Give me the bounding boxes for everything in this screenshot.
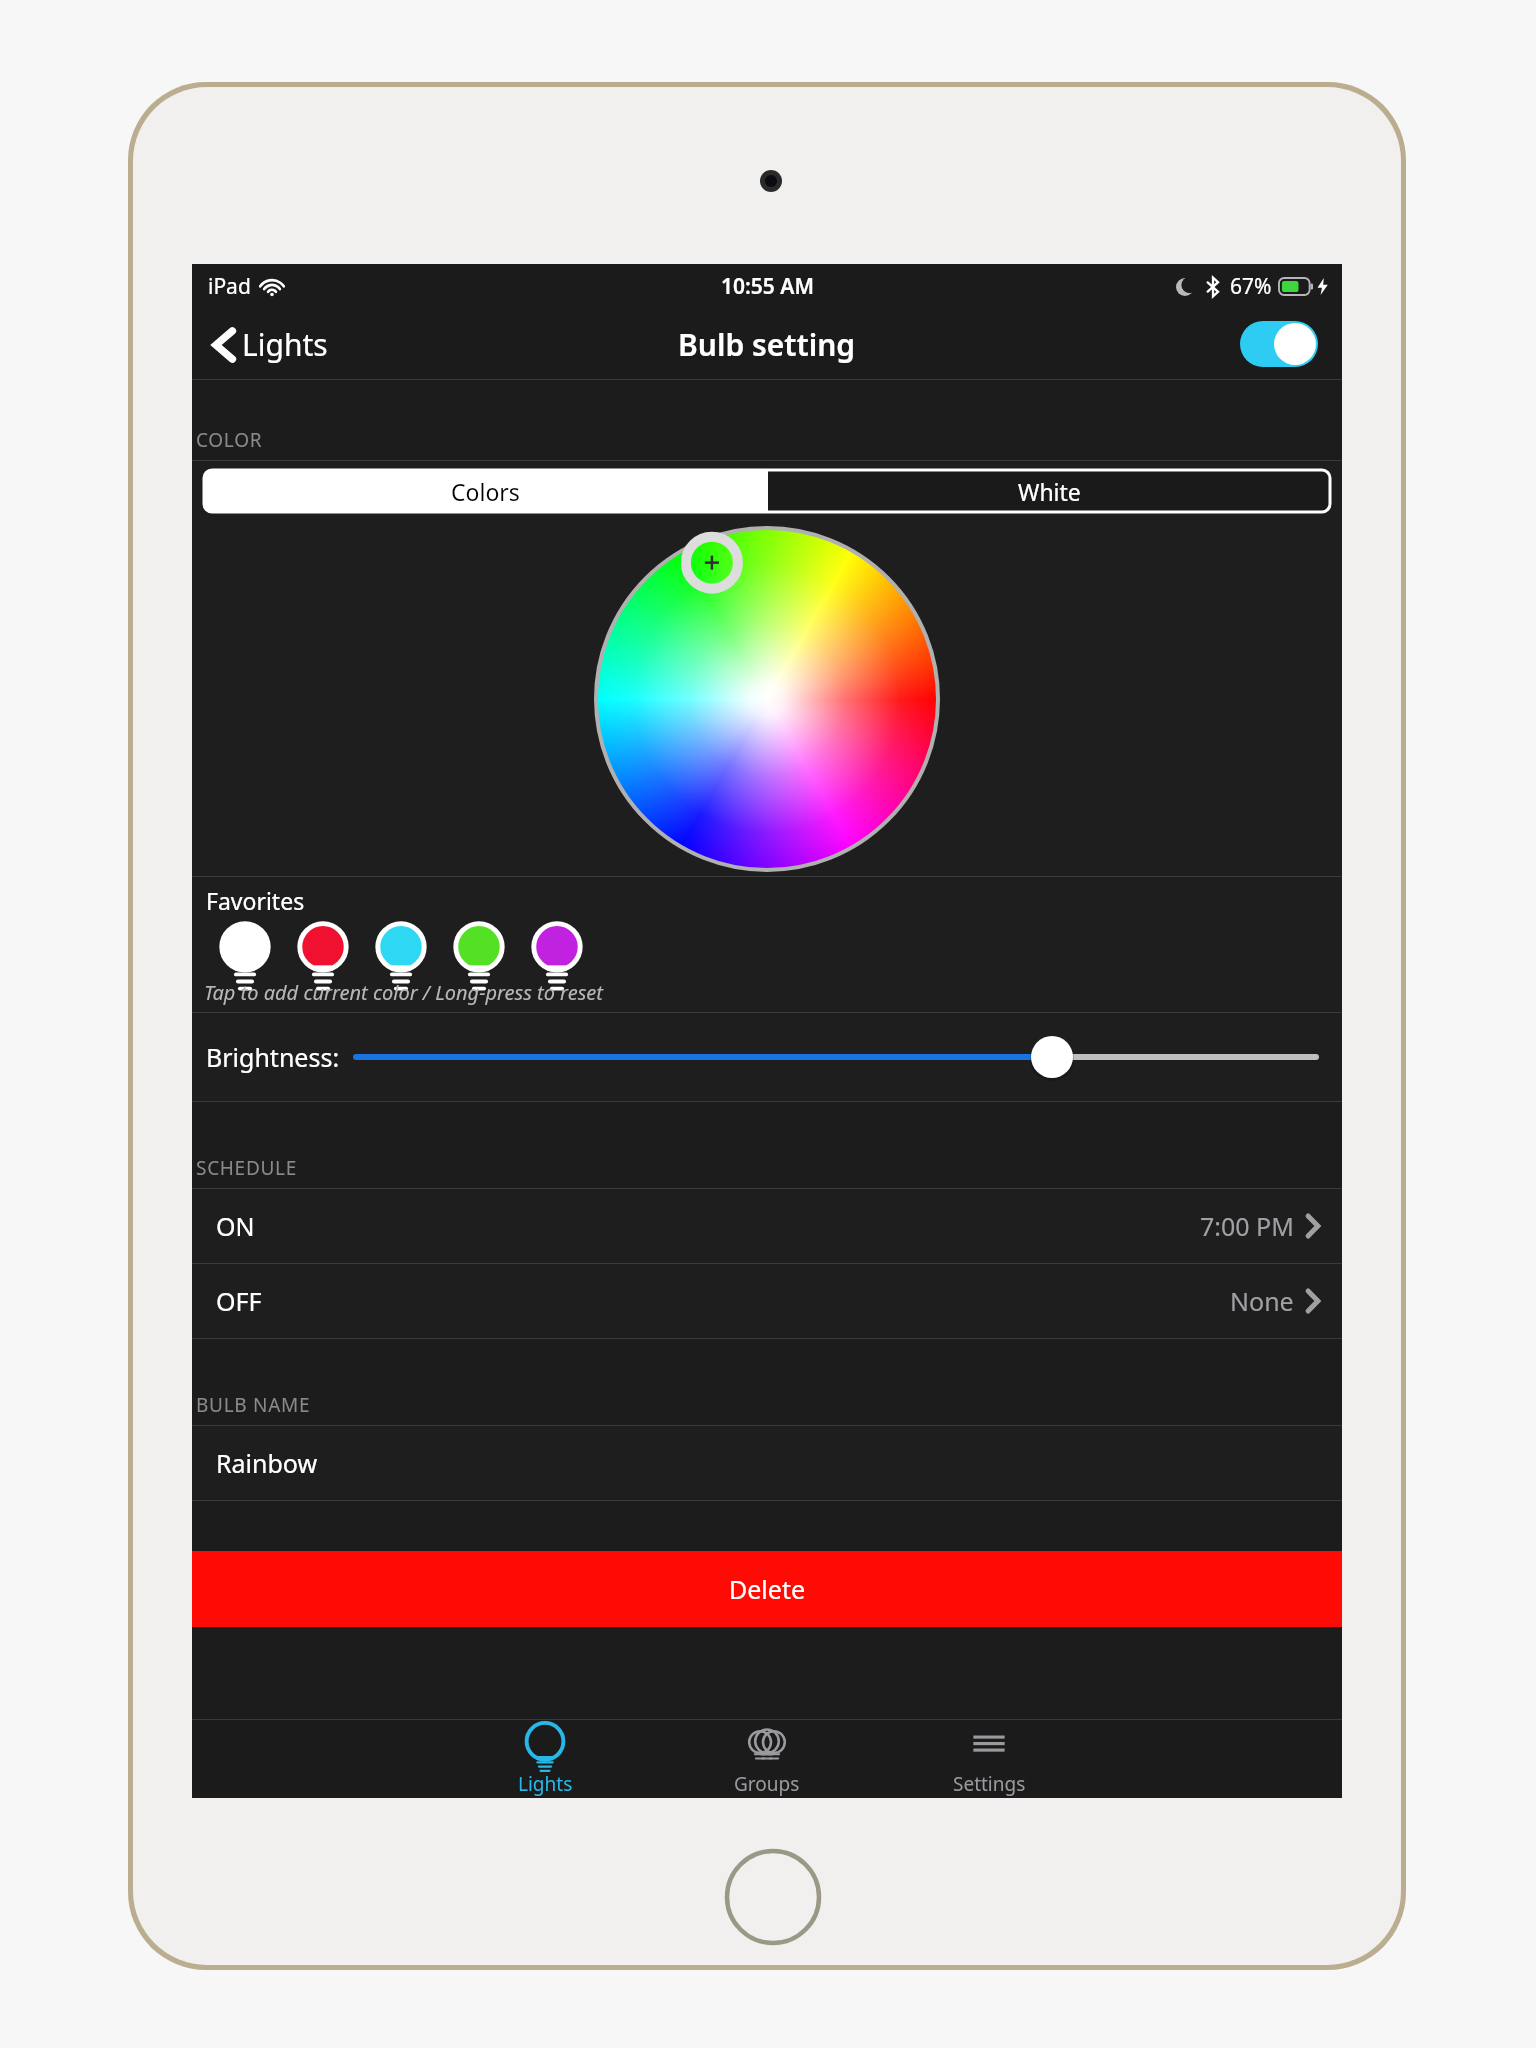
- button[interactable]: White: [768, 470, 1330, 512]
- staticText: Rainbow: [216, 1446, 318, 1480]
- button[interactable]: Power toggle: [1240, 321, 1318, 367]
- button[interactable]: OFF: [192, 1264, 1342, 1338]
- staticText: Delete: [729, 1572, 806, 1606]
- staticText: ON: [216, 1209, 255, 1243]
- staticText: COLOR: [196, 427, 263, 453]
- button[interactable]: Favorite color: [206, 922, 284, 994]
- staticText: None: [1230, 1284, 1294, 1318]
- staticText: Groups: [734, 1771, 800, 1797]
- button[interactable]: Lights: [206, 318, 336, 371]
- button[interactable]: Favorite color: [440, 922, 518, 994]
- button[interactable]: Favorite color: [362, 922, 440, 994]
- staticText: Settings: [953, 1771, 1026, 1797]
- button[interactable]: Rainbow: [192, 1426, 1342, 1500]
- button[interactable]: Favorite color: [518, 922, 596, 994]
- staticText: Lights: [518, 1771, 573, 1797]
- staticText: BULB NAME: [196, 1392, 311, 1418]
- button[interactable]: ON: [192, 1189, 1342, 1263]
- staticText: SCHEDULE: [196, 1155, 297, 1181]
- button[interactable]: Lights: [479, 1720, 611, 1798]
- button[interactable]: Brightness slider: [356, 1033, 1316, 1081]
- staticText: Favorites: [206, 885, 305, 916]
- button[interactable]: Settings: [923, 1720, 1055, 1798]
- button[interactable]: Color wheel: [592, 524, 942, 874]
- staticText: Lights: [242, 324, 328, 365]
- button[interactable]: Favorite color: [284, 922, 362, 994]
- staticText: 67%: [1230, 272, 1272, 301]
- staticText: White: [1018, 476, 1081, 507]
- staticText: iPad: [208, 272, 251, 301]
- button[interactable]: Groups: [701, 1720, 833, 1798]
- staticText: 7:00 PM: [1200, 1209, 1294, 1243]
- staticText: 10:55 AM: [721, 272, 814, 301]
- button[interactable]: Delete: [192, 1551, 1342, 1627]
- staticText: Brightness:: [206, 1040, 340, 1074]
- staticText: OFF: [216, 1284, 262, 1318]
- staticText: Bulb setting: [678, 324, 856, 365]
- staticText: Colors: [451, 476, 520, 507]
- button[interactable]: Colors: [204, 470, 766, 512]
- staticText: Tap to add current color / Long-press to…: [204, 979, 603, 1006]
